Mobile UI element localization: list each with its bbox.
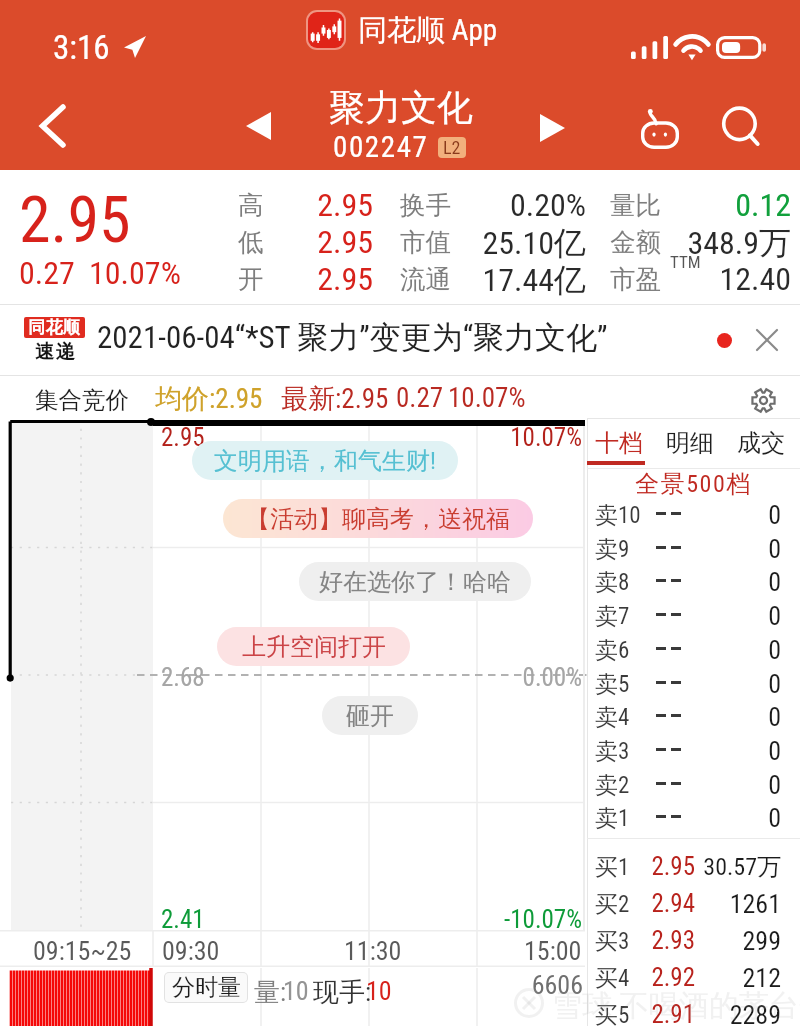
staticText: 2.95: [73, 186, 373, 224]
staticText: 0.00%: [282, 663, 582, 692]
staticText: 2.95: [625, 852, 695, 881]
staticText: 2.95: [19, 183, 131, 258]
staticText: 卖8: [595, 568, 630, 597]
button[interactable]: 买1: [587, 851, 800, 881]
staticText: 0: [768, 770, 781, 800]
staticText: 买1: [595, 853, 630, 882]
staticText: 0: [768, 500, 781, 530]
button[interactable]: 卖6: [587, 634, 800, 664]
staticText: 好在选你了！哈哈: [319, 567, 511, 597]
staticText: 0: [768, 534, 781, 564]
button[interactable]: 卖5: [587, 668, 800, 698]
staticText: 6606: [283, 970, 583, 1000]
button[interactable]: 成交: [725, 420, 796, 465]
staticText: 开: [238, 263, 264, 295]
staticText: 30.57万: [703, 852, 781, 882]
button[interactable]: AI assistant: [620, 88, 700, 168]
button[interactable]: Previous stock: [218, 86, 298, 166]
staticText: 买4: [595, 964, 630, 993]
staticText: 买3: [595, 927, 630, 956]
button[interactable]: 卖7: [587, 600, 800, 630]
button[interactable]: 明细: [654, 420, 725, 465]
staticText: 全景500档: [587, 469, 800, 499]
button[interactable]: 买2: [587, 888, 800, 918]
staticText: 1261: [729, 889, 781, 919]
staticText: 文明用语，和气生财!: [214, 446, 436, 476]
staticText: 换手: [400, 189, 451, 221]
staticText: 成交: [737, 428, 785, 458]
staticText: 09:15~25: [33, 936, 132, 966]
staticText: 速递: [34, 340, 76, 364]
staticText: 2.68: [161, 663, 205, 692]
staticText: L2: [443, 137, 461, 158]
staticText: 雪球 不喝酒的茅台哥: [552, 987, 800, 1025]
staticText: 0: [768, 803, 781, 833]
staticText: 2289: [729, 1000, 781, 1026]
staticText: 卖2: [595, 771, 630, 800]
staticText: 002247: [333, 130, 429, 164]
button[interactable]: 卖8: [587, 566, 800, 596]
button[interactable]: 买3: [587, 925, 800, 955]
staticText: 3:16: [53, 28, 110, 67]
staticText: 流通: [400, 263, 451, 295]
staticText: 市盈: [610, 263, 661, 295]
staticText: 【活动】聊高考，送祝福: [246, 504, 510, 534]
staticText: 上升空间打开: [242, 632, 386, 662]
button[interactable]: Close: [745, 318, 789, 362]
staticText: 0: [768, 601, 781, 631]
staticText: 低: [238, 226, 264, 258]
staticText: 2.93: [625, 926, 695, 955]
staticText: 0.20%: [286, 186, 586, 224]
button[interactable]: Settings: [741, 378, 785, 422]
staticText: 348.9万: [491, 223, 791, 263]
button[interactable]: 买4: [587, 962, 800, 992]
button[interactable]: Back: [0, 82, 108, 170]
button[interactable]: 卖4: [587, 701, 800, 731]
staticText: 15:00: [524, 936, 582, 966]
staticText: 212: [742, 963, 781, 993]
button[interactable]: 卖2: [587, 769, 800, 799]
staticText: 10: [283, 976, 309, 1006]
staticText: 十档: [595, 428, 643, 458]
staticText: 0.12: [491, 186, 791, 224]
staticText: 量:: [254, 976, 287, 1009]
staticText: 同花顺: [28, 317, 81, 338]
staticText: 聚力文化: [329, 85, 473, 130]
staticText: 均价:2.95: [155, 382, 263, 416]
staticText: 卖7: [595, 602, 630, 631]
staticText: 量比: [610, 189, 661, 221]
staticText: 集合竞价: [35, 385, 129, 415]
button[interactable]: Next stock: [512, 88, 592, 168]
staticText: 2.91: [625, 1000, 695, 1026]
staticText: 12.40: [491, 260, 791, 298]
staticText: 0.27: [19, 254, 75, 292]
staticText: 09:30: [162, 936, 220, 966]
button[interactable]: 卖3: [587, 735, 800, 765]
staticText: -10.07%: [282, 905, 582, 934]
staticText: 明细: [666, 428, 714, 458]
staticText: 17.44亿: [286, 260, 586, 300]
staticText: 买5: [595, 1001, 630, 1026]
staticText: 0: [768, 736, 781, 766]
staticText: 10.07%: [448, 382, 526, 414]
staticText: 卖5: [595, 670, 630, 699]
staticText: 0.27: [396, 382, 444, 414]
staticText: 最新:2.95: [281, 382, 389, 416]
button[interactable]: 十档: [583, 420, 654, 465]
button[interactable]: 卖10: [587, 499, 800, 529]
staticText: 2.95: [73, 260, 373, 298]
button[interactable]: 同花顺: [0, 305, 800, 375]
staticText: 同花顺 App: [358, 12, 497, 49]
staticText: TTM: [670, 252, 701, 272]
staticText: 10.07%: [282, 423, 582, 452]
button[interactable]: 卖1: [587, 802, 800, 832]
button[interactable]: Search: [700, 86, 780, 166]
staticText: 市值: [400, 226, 451, 258]
staticText: 现手:: [313, 976, 372, 1009]
staticText: 2.41: [161, 905, 205, 934]
button[interactable]: 买5: [587, 999, 800, 1026]
staticText: 2.92: [625, 963, 695, 992]
button[interactable]: 卖9: [587, 533, 800, 563]
staticText: 25.10亿: [286, 223, 586, 263]
staticText: 2.94: [625, 889, 695, 918]
